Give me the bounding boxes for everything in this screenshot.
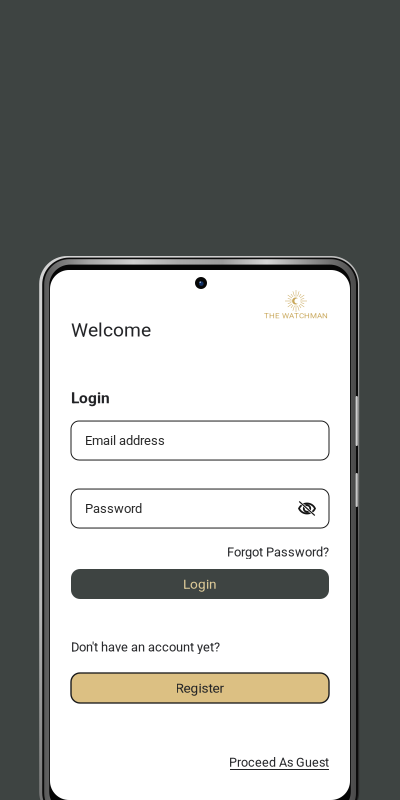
staticText: Login — [183, 576, 217, 592]
staticText: Welcome — [71, 319, 151, 341]
button[interactable]: Proceed As Guest — [71, 756, 329, 774]
button[interactable]: Login — [71, 569, 329, 599]
button[interactable]: Show password — [298, 500, 316, 516]
staticText: Register — [175, 680, 224, 696]
staticText: Login — [71, 389, 110, 407]
staticText: Password — [85, 501, 142, 516]
staticText: Proceed As Guest — [229, 755, 329, 770]
staticText: Forgot Password? — [227, 544, 329, 559]
staticText: Don't have an account yet? — [71, 639, 220, 654]
button[interactable]: Forgot Password? — [71, 544, 329, 559]
button[interactable]: Register — [71, 673, 329, 703]
staticText: THE WATCHMAN — [264, 311, 328, 320]
staticText: Email address — [85, 433, 165, 448]
